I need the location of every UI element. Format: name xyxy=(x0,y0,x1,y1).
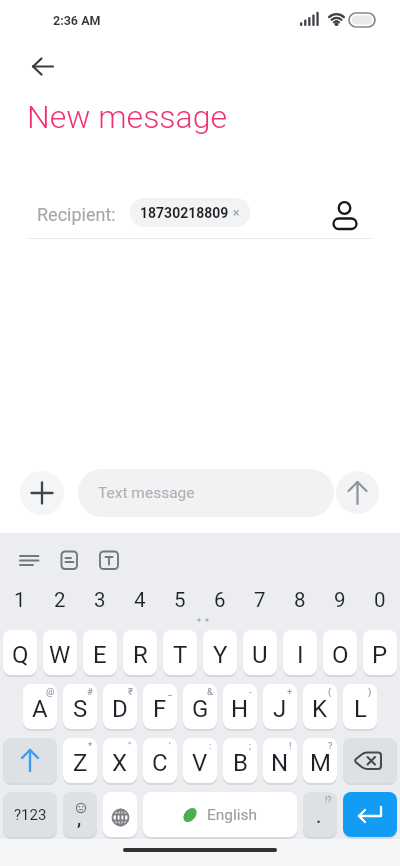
button[interactable] xyxy=(24,52,64,82)
button[interactable]: Q xyxy=(3,630,37,675)
staticText: G xyxy=(192,695,209,723)
button[interactable] xyxy=(343,792,397,837)
staticText: S xyxy=(73,695,88,723)
button[interactable]: , xyxy=(63,792,97,837)
button[interactable]: C xyxy=(143,738,177,783)
staticText: 1 xyxy=(14,588,26,612)
staticText: , xyxy=(77,807,82,829)
button[interactable]: 0 xyxy=(360,585,400,615)
button[interactable]: L xyxy=(343,684,377,729)
staticText: I xyxy=(297,641,304,669)
staticText: C xyxy=(152,749,168,777)
button[interactable]: 6 xyxy=(200,585,240,615)
staticText: B xyxy=(233,749,248,777)
staticText: !? xyxy=(325,795,332,805)
staticText: 8 xyxy=(294,588,306,612)
button[interactable]: ?123 xyxy=(3,792,57,837)
staticText: 4 xyxy=(134,588,146,612)
button[interactable] xyxy=(3,738,57,783)
button[interactable] xyxy=(103,792,137,837)
staticText: P xyxy=(372,641,388,669)
staticText: ! xyxy=(289,740,292,751)
staticText: New message xyxy=(27,98,228,136)
button[interactable]: Z xyxy=(63,738,97,783)
button[interactable]: R xyxy=(123,630,157,675)
button[interactable]: T xyxy=(163,630,197,675)
staticText: 6 xyxy=(214,588,226,612)
staticText: Text message xyxy=(98,484,195,502)
staticText: * xyxy=(88,740,93,751)
button[interactable]: U xyxy=(243,630,277,675)
staticText: : xyxy=(209,740,212,751)
staticText: M xyxy=(310,749,331,777)
staticText: & xyxy=(207,686,213,697)
button[interactable]: A xyxy=(23,684,57,729)
button[interactable]: I xyxy=(283,630,317,675)
staticText: 0 xyxy=(374,588,386,612)
button[interactable]: 4 xyxy=(120,585,160,615)
button[interactable]: H xyxy=(223,684,257,729)
staticText: Recipient: xyxy=(37,204,116,225)
button[interactable] xyxy=(328,194,362,236)
button[interactable]: 2 xyxy=(40,585,80,615)
staticText: × xyxy=(233,206,240,220)
staticText: 2:36 AM xyxy=(53,13,101,28)
button[interactable]: X xyxy=(103,738,137,783)
staticText: + xyxy=(287,686,293,697)
staticText: N xyxy=(271,749,289,777)
staticText: R xyxy=(133,641,148,669)
staticText: K xyxy=(312,695,328,723)
button[interactable]: Text message xyxy=(78,469,334,517)
staticText: D xyxy=(112,695,128,723)
staticText: X xyxy=(112,749,128,777)
staticText: F xyxy=(153,695,167,723)
button[interactable]: F xyxy=(143,684,177,729)
button[interactable]: V xyxy=(183,738,217,783)
button[interactable] xyxy=(20,471,64,515)
button[interactable]: K xyxy=(303,684,337,729)
button[interactable]: 5 xyxy=(160,585,200,615)
button[interactable]: 7 xyxy=(240,585,280,615)
staticText: E xyxy=(93,641,107,669)
button[interactable]: S xyxy=(63,684,97,729)
button[interactable]: !? xyxy=(303,792,337,837)
staticText: ?123 xyxy=(14,806,47,824)
staticText: V xyxy=(192,749,208,777)
button[interactable]: D xyxy=(103,684,137,729)
button[interactable]: W xyxy=(43,630,77,675)
staticText: L xyxy=(354,695,367,723)
staticText: ? xyxy=(328,740,333,751)
button[interactable] xyxy=(336,471,379,514)
staticText: ; xyxy=(249,740,252,751)
button[interactable]: 18730218809 xyxy=(130,198,250,227)
staticText: U xyxy=(252,641,268,669)
button[interactable]: 3 xyxy=(80,585,120,615)
staticText: ' xyxy=(169,740,171,751)
button[interactable]: N xyxy=(263,738,297,783)
staticText: # xyxy=(87,686,93,697)
staticText: ( xyxy=(328,686,332,697)
button[interactable] xyxy=(343,738,397,783)
button[interactable]: E xyxy=(83,630,117,675)
staticText: O xyxy=(332,641,349,669)
button[interactable]: 1 xyxy=(0,585,40,615)
staticText: ₹ xyxy=(128,686,133,697)
button[interactable]: J xyxy=(263,684,297,729)
staticText: Z xyxy=(73,749,88,777)
staticText: . xyxy=(316,805,322,827)
staticText: English xyxy=(207,806,258,824)
button[interactable]: 9 xyxy=(320,585,360,615)
staticText: 18730218809 xyxy=(140,205,229,221)
button[interactable]: G xyxy=(183,684,217,729)
staticText: _ xyxy=(168,686,173,697)
staticText: 9 xyxy=(334,588,346,612)
button[interactable]: M xyxy=(303,738,337,783)
button[interactable]: 8 xyxy=(280,585,320,615)
button[interactable]: O xyxy=(323,630,357,675)
button[interactable]: P xyxy=(363,630,397,675)
staticText: 5 xyxy=(174,588,186,612)
button[interactable]: Y xyxy=(203,630,237,675)
staticText: H xyxy=(231,695,249,723)
button[interactable]: English xyxy=(143,792,297,837)
button[interactable]: B xyxy=(223,738,257,783)
